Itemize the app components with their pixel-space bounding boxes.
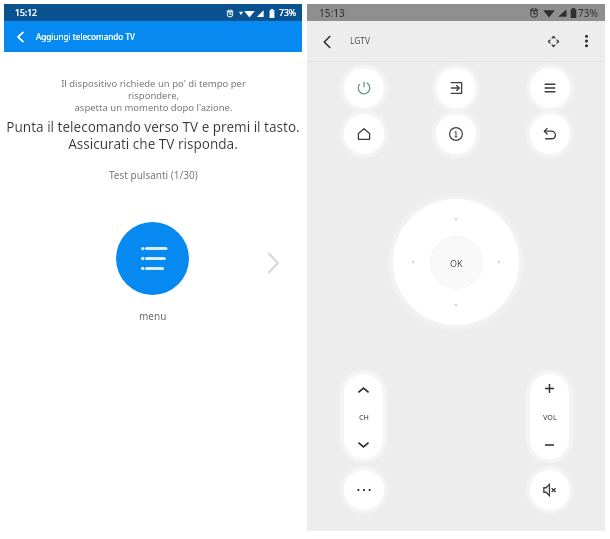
button[interactable]: Channel down [344, 431, 383, 459]
button[interactable]: Home [344, 114, 384, 154]
button[interactable]: Back [315, 29, 339, 53]
staticText: Punta il telecomando verso TV e premi il… [6, 118, 300, 153]
staticText: VOL [543, 412, 557, 422]
button[interactable]: Volume up [530, 374, 569, 402]
staticText: 73% [279, 7, 297, 19]
button[interactable]: More options [574, 29, 598, 53]
staticText: CH [359, 412, 369, 422]
button[interactable]: Volume down [530, 431, 569, 459]
button[interactable]: Back [530, 114, 570, 154]
staticText: Aggiungi telecomando TV [36, 31, 135, 42]
button[interactable]: Back [8, 25, 32, 49]
staticText: Il dispositivo richiede un po' di tempo … [61, 77, 246, 114]
button[interactable]: Power [344, 68, 384, 108]
staticText: OK [450, 257, 463, 269]
button[interactable]: Next [258, 248, 288, 278]
button[interactable]: Channel up [344, 374, 383, 402]
staticText: 73% [578, 6, 598, 20]
staticText: 15:13 [319, 6, 345, 20]
staticText: LGTV [350, 35, 371, 46]
staticText: Test pulsanti (1/30) [109, 168, 198, 182]
button[interactable]: More [344, 470, 384, 510]
button[interactable]: Input source [436, 68, 476, 108]
staticText: menu [139, 309, 167, 323]
staticText: 15:12 [15, 7, 38, 19]
button[interactable]: Mute [530, 470, 570, 510]
button[interactable]: menu [116, 222, 189, 295]
button[interactable]: Info [436, 114, 476, 154]
button[interactable]: Menu [530, 68, 570, 108]
button[interactable]: OK [430, 236, 483, 289]
button[interactable]: Direction pad [541, 29, 565, 53]
button[interactable]: Direction pad [393, 199, 519, 325]
